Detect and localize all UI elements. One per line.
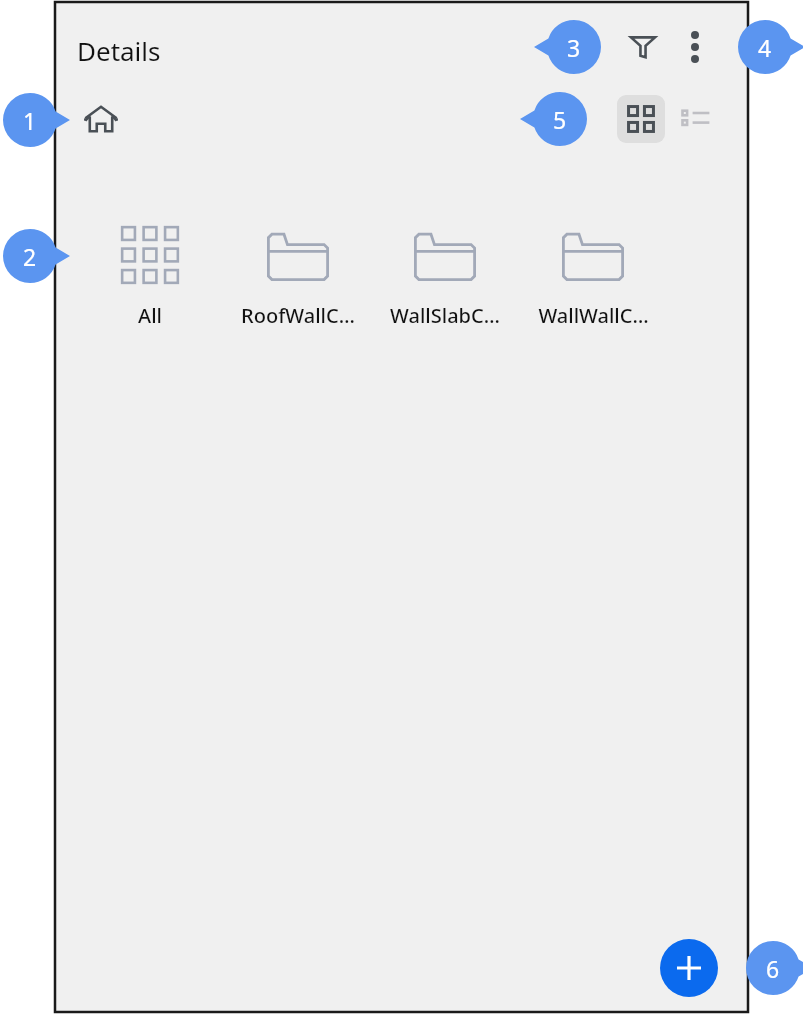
button[interactable]: Add — [660, 939, 718, 997]
staticText: 4 — [758, 32, 772, 63]
staticText: 3 — [567, 32, 581, 63]
staticText: WallWallC… — [538, 302, 649, 329]
staticText: 1 — [23, 105, 37, 136]
staticText: 5 — [553, 104, 567, 135]
staticText: WallSlabC… — [390, 302, 500, 329]
button[interactable]: WallWallC… — [520, 208, 666, 360]
button[interactable]: Filter — [619, 23, 667, 71]
button[interactable]: RoofWallC… — [225, 208, 371, 360]
staticText: 6 — [766, 953, 780, 984]
staticText: Details — [77, 33, 161, 68]
button[interactable]: All — [77, 208, 223, 360]
staticText: RoofWallC… — [241, 302, 355, 329]
staticText: 2 — [23, 241, 37, 272]
button[interactable]: Grid view — [617, 95, 665, 143]
staticText: All — [138, 302, 162, 329]
button[interactable]: More options — [671, 23, 719, 71]
button[interactable]: Home — [77, 95, 125, 143]
button[interactable]: List view — [671, 95, 719, 143]
button[interactable]: WallSlabC… — [372, 208, 518, 360]
